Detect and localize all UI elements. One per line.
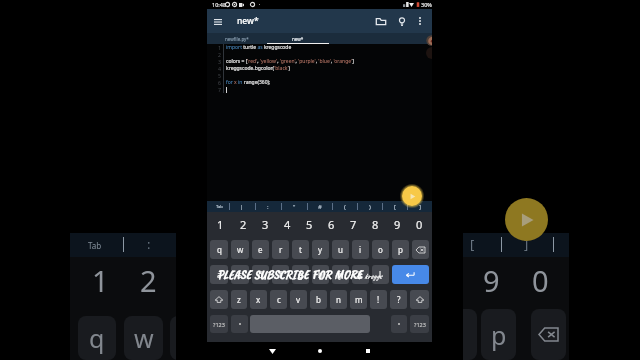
button[interactable]: q (78, 316, 116, 360)
button[interactable]: m (350, 290, 367, 309)
staticText: e (258, 244, 263, 255)
staticText: 3 (262, 217, 269, 232)
button[interactable]: c (270, 290, 287, 309)
button[interactable]: p (392, 240, 409, 259)
button[interactable]: i (352, 240, 369, 259)
button[interactable]: t (292, 240, 309, 259)
button[interactable]: # (307, 201, 332, 212)
button[interactable]: b (310, 290, 327, 309)
button[interactable]: new* (267, 33, 329, 44)
staticText: g (298, 269, 303, 280)
staticText: w (134, 321, 154, 355)
button[interactable]: ? (390, 290, 407, 309)
staticText: 0 (532, 261, 549, 300)
button[interactable]: ?123 (210, 315, 228, 333)
button[interactable]: y (312, 240, 329, 259)
staticText: 7 (218, 86, 221, 93)
button[interactable]: w (231, 240, 249, 259)
button[interactable]: q (210, 240, 228, 259)
staticText: 5 (306, 217, 313, 232)
staticText: [ (470, 235, 475, 253)
button[interactable]: Shift (410, 290, 429, 309)
button[interactable]: Home (311, 342, 329, 360)
staticText: colors = ['red', 'yellow', 'green', 'pur… (226, 58, 354, 65)
staticText: 2 (218, 51, 221, 58)
button[interactable]: " (281, 201, 307, 212)
button[interactable]: o (372, 240, 389, 259)
button[interactable]: u (332, 240, 349, 259)
button[interactable]: d (252, 265, 269, 284)
button[interactable]: newfile.py* (207, 33, 267, 44)
button[interactable]: 6 (320, 212, 342, 237)
button[interactable]: 0 (408, 212, 430, 237)
staticText: : (267, 203, 269, 211)
button[interactable]: g (292, 265, 309, 284)
button[interactable]: Recent apps (359, 342, 377, 360)
button[interactable]: Run (402, 186, 422, 206)
button[interactable]: a (210, 265, 228, 284)
button[interactable]: Back (263, 342, 281, 360)
button[interactable]: l (372, 265, 389, 284)
button[interactable]: [ (382, 201, 407, 212)
button[interactable]: k (352, 265, 369, 284)
button[interactable]: 1 (209, 212, 232, 237)
staticText: o (378, 244, 383, 255)
staticText: 5 (218, 72, 221, 79)
button[interactable]: r (272, 240, 289, 259)
staticText: 3 (218, 58, 221, 65)
staticText: on kreggs (355, 271, 382, 282)
button[interactable]: ?123 (410, 315, 429, 333)
button[interactable]: Hints (394, 13, 410, 29)
button[interactable]: : (255, 201, 281, 212)
staticText: ) (369, 203, 371, 211)
button[interactable]: v (290, 290, 307, 309)
staticText: q (217, 244, 222, 255)
staticText: : (147, 235, 151, 253)
button[interactable]: ) (357, 201, 382, 212)
button[interactable]: w (124, 316, 163, 360)
button[interactable]: p (481, 309, 516, 360)
staticText: 9 (394, 217, 401, 232)
button[interactable] (463, 309, 477, 360)
staticText: new* (292, 36, 304, 42)
staticText: 6 (328, 217, 335, 232)
button[interactable]: ! (370, 290, 387, 309)
button[interactable]: Open file (373, 13, 389, 29)
button[interactable]: j (332, 265, 349, 284)
button[interactable]: 4 (276, 212, 298, 237)
button[interactable]: Shift (210, 290, 228, 309)
button[interactable]: f (272, 265, 289, 284)
button[interactable]: Run program (505, 198, 548, 241)
staticText: PLEASE SUBSCRIBE FOR MORE (217, 266, 362, 283)
button[interactable]: Backspace (531, 309, 566, 360)
button[interactable]: Backspace (412, 240, 429, 259)
button[interactable]: 8 (364, 212, 386, 237)
staticText: ?123 (213, 321, 225, 328)
button[interactable]: e (252, 240, 269, 259)
button[interactable] (170, 316, 176, 360)
button[interactable]: ( (332, 201, 357, 212)
button[interactable]: Enter (392, 265, 429, 284)
button[interactable]: Period (391, 315, 407, 333)
button[interactable]: | (229, 201, 255, 212)
button[interactable]: Period (231, 315, 248, 333)
staticText: 1 (92, 261, 109, 300)
button[interactable]: 3 (254, 212, 276, 237)
button[interactable]: 9 (386, 212, 408, 237)
button[interactable]: 7 (342, 212, 364, 237)
button[interactable]: z (231, 290, 247, 309)
button[interactable]: Tab (209, 201, 229, 212)
button[interactable]: s (231, 265, 249, 284)
button[interactable]: ] (407, 201, 432, 212)
button[interactable]: More options (413, 14, 427, 28)
button[interactable]: n (330, 290, 347, 309)
button[interactable]: 5 (298, 212, 320, 237)
button[interactable]: x (250, 290, 267, 309)
button[interactable]: 2 (232, 212, 254, 237)
staticText: 6 (218, 79, 221, 86)
button[interactable]: h (312, 265, 329, 284)
staticText: " (293, 203, 296, 211)
staticText: Tab (88, 240, 102, 251)
button[interactable]: Menu (210, 14, 225, 29)
